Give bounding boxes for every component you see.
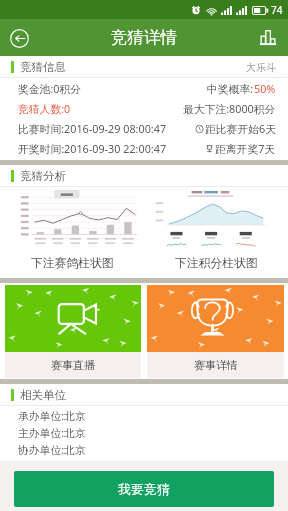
- staticText: 竞猜人数:0: [18, 101, 71, 116]
- button[interactable]: [12, 190, 138, 253]
- staticText: 相关单位: [20, 388, 66, 402]
- button[interactable]: 赛事详情: [147, 285, 284, 378]
- staticText: 比赛时间:2016-09-29 08:00:47: [18, 121, 167, 136]
- button[interactable]: [150, 190, 276, 253]
- staticText: 最大下注:8000积分: [183, 101, 276, 116]
- button[interactable]: Back: [5, 24, 33, 52]
- staticText: 我要竞猜: [118, 481, 170, 497]
- staticText: 开奖时间:2016-09-30 22:00:47: [18, 141, 167, 156]
- staticText: 距离开奖7天: [215, 141, 276, 156]
- staticText: 大乐斗: [246, 61, 276, 74]
- staticText: 50%: [254, 81, 276, 96]
- staticText: 主办单位:北京: [18, 425, 86, 442]
- button[interactable]: 赛事直播: [5, 285, 141, 378]
- button[interactable]: Statistics: [253, 23, 283, 53]
- staticText: 赛事直播: [51, 358, 95, 372]
- staticText: 中奖概率:: [207, 81, 254, 96]
- staticText: 竞猜信息: [20, 60, 66, 74]
- staticText: 协办单位:北京: [18, 442, 86, 459]
- staticText: 74: [271, 3, 283, 17]
- button[interactable]: 我要竞猜: [14, 471, 274, 507]
- staticText: 距比赛开始6天: [205, 121, 276, 136]
- staticText: 赛事详情: [194, 358, 238, 372]
- staticText: 承办单位:北京: [18, 408, 86, 425]
- staticText: 下注赛鸽柱状图: [31, 256, 114, 271]
- staticText: 竞猜分析: [20, 169, 66, 183]
- staticText: 竞猜详情: [111, 27, 177, 48]
- staticText: 奖金池:0积分: [18, 81, 82, 96]
- staticText: 下注积分柱状图: [175, 256, 258, 271]
